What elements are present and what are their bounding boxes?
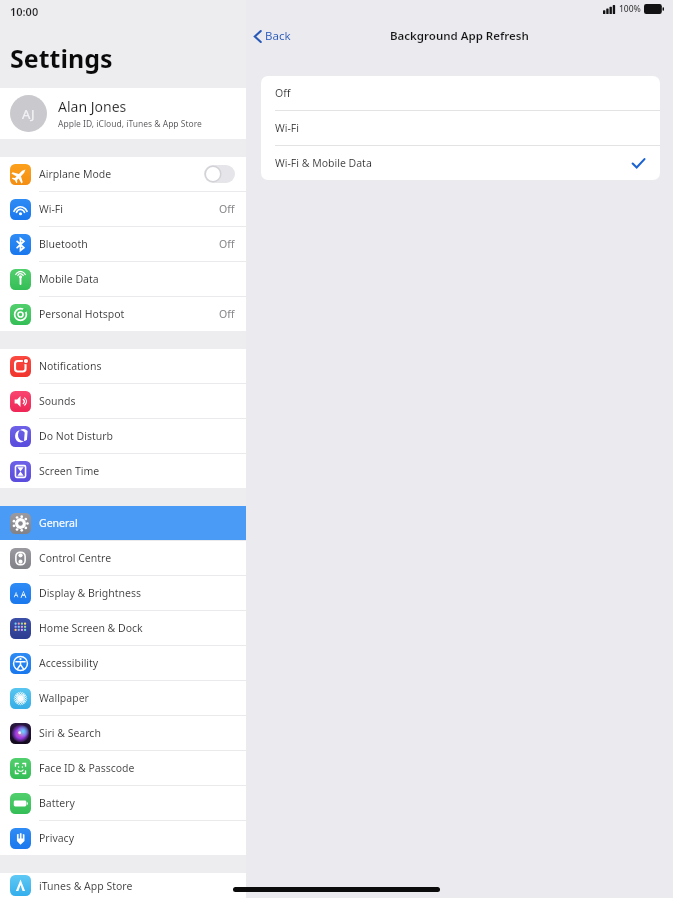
button[interactable]: Privacy [0,821,246,855]
staticText: Display & Brightness [39,586,235,600]
staticText: Do Not Disturb [39,429,235,443]
staticText: Wi-Fi [275,121,645,135]
staticText: Airplane Mode [39,167,204,181]
staticText: Background App Refresh [390,28,529,44]
button[interactable]: Notifications [0,349,246,383]
button[interactable]: Wallpaper [0,681,246,715]
staticText: 100% [619,3,641,15]
staticText: Alan Jones [58,97,127,116]
button[interactable]: Display & Brightness [0,576,246,610]
staticText: Wi-Fi & Mobile Data [275,156,632,170]
staticText: Off [219,202,235,216]
button[interactable]: Siri & Search [0,716,246,750]
staticText: Wallpaper [39,691,235,705]
button[interactable]: Wi-Fi [0,192,246,226]
button[interactable]: Screen Time [0,454,246,488]
staticText: iTunes & App Store [39,879,235,893]
staticText: Bluetooth [39,237,219,251]
button[interactable]: Personal Hotspot [0,297,246,331]
staticText: Off [275,86,645,100]
staticText: Siri & Search [39,726,235,740]
staticText: Settings [10,41,113,75]
button[interactable]: Do Not Disturb [0,419,246,453]
staticText: Control Centre [39,551,235,565]
button[interactable]: Sounds [0,384,246,418]
staticText: Off [219,237,235,251]
staticText: Privacy [39,831,235,845]
button[interactable]: AJ [0,88,246,139]
button[interactable]: Wi-Fi & Mobile Data [261,146,660,180]
staticText: Wi-Fi [39,202,219,216]
button[interactable]: Battery [0,786,246,820]
staticText: Home Screen & Dock [39,621,235,635]
button[interactable]: Bluetooth [0,227,246,261]
button[interactable]: Mobile Data [0,262,246,296]
staticText: Battery [39,796,235,810]
button[interactable]: iTunes & App Store [0,873,246,898]
staticText: Notifications [39,359,235,373]
staticText: Screen Time [39,464,235,478]
button[interactable]: Control Centre [0,541,246,575]
staticText: AJ [22,105,35,123]
staticText: 10:00 [10,4,39,19]
staticText: Back [265,28,291,44]
button[interactable]: Accessibility [0,646,246,680]
button[interactable]: Home Screen & Dock [0,611,246,645]
staticText: Face ID & Passcode [39,761,235,775]
staticText: Mobile Data [39,272,235,286]
button[interactable]: Wi-Fi [261,111,660,145]
button[interactable]: Off [261,76,660,110]
button[interactable]: Airplane Mode [0,157,246,191]
staticText: Sounds [39,394,235,408]
staticText: Off [219,307,235,321]
staticText: Apple ID, iCloud, iTunes & App Store [58,118,202,130]
staticText: General [39,516,235,530]
button[interactable]: Back [246,24,299,48]
button[interactable]: General [0,506,246,540]
staticText: Accessibility [39,656,235,670]
staticText: Personal Hotspot [39,307,219,321]
button[interactable]: Face ID & Passcode [0,751,246,785]
